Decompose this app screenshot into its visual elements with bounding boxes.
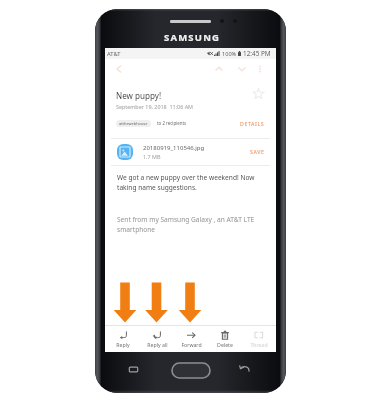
- button[interactable]: Previous message: [212, 62, 226, 76]
- staticText: atthewebhouse: [119, 121, 148, 126]
- staticText: to 2 recipients: [157, 120, 187, 126]
- staticText: 100%: [222, 50, 237, 58]
- staticText: Delete: [217, 341, 233, 348]
- button[interactable]: Star message: [253, 88, 264, 99]
- staticText: September 19, 2018 11:06 AM: [116, 103, 193, 110]
- staticText: Sent from my Samsung Galaxy , an AT&T LT…: [117, 215, 255, 234]
- staticText: We got a new puppy over the weekend! Now…: [117, 173, 255, 192]
- staticText: Forward: [181, 341, 202, 348]
- staticText: 20180919_110546.jpg: [143, 144, 205, 152]
- button[interactable]: Forward: [174, 326, 208, 352]
- button[interactable]: Reply: [105, 326, 140, 352]
- button[interactable]: DETAILS: [240, 120, 265, 127]
- button[interactable]: Image attachment: [117, 144, 133, 160]
- staticText: New puppy!: [116, 90, 162, 101]
- button[interactable]: Back: [112, 62, 126, 76]
- staticText: AT&T: [107, 50, 121, 58]
- staticText: 12:45 PM: [243, 49, 271, 58]
- button[interactable]: Back: [239, 363, 251, 375]
- button[interactable]: SAVE: [250, 148, 265, 155]
- button[interactable]: Reply all: [140, 326, 174, 352]
- staticText: Thread: [250, 341, 268, 348]
- button[interactable]: atthewebhouse: [116, 120, 151, 127]
- button[interactable]: More options: [253, 62, 267, 76]
- button[interactable]: Delete: [208, 326, 242, 352]
- staticText: Reply: [116, 341, 130, 348]
- button[interactable]: Home: [171, 362, 211, 379]
- staticText: Reply all: [147, 341, 168, 348]
- button[interactable]: Thread: [242, 326, 276, 352]
- staticText: SAMSUNG: [164, 31, 221, 44]
- staticText: 1.7 MB: [143, 153, 161, 160]
- button[interactable]: Next message: [235, 62, 249, 76]
- button[interactable]: Recent apps: [128, 364, 139, 375]
